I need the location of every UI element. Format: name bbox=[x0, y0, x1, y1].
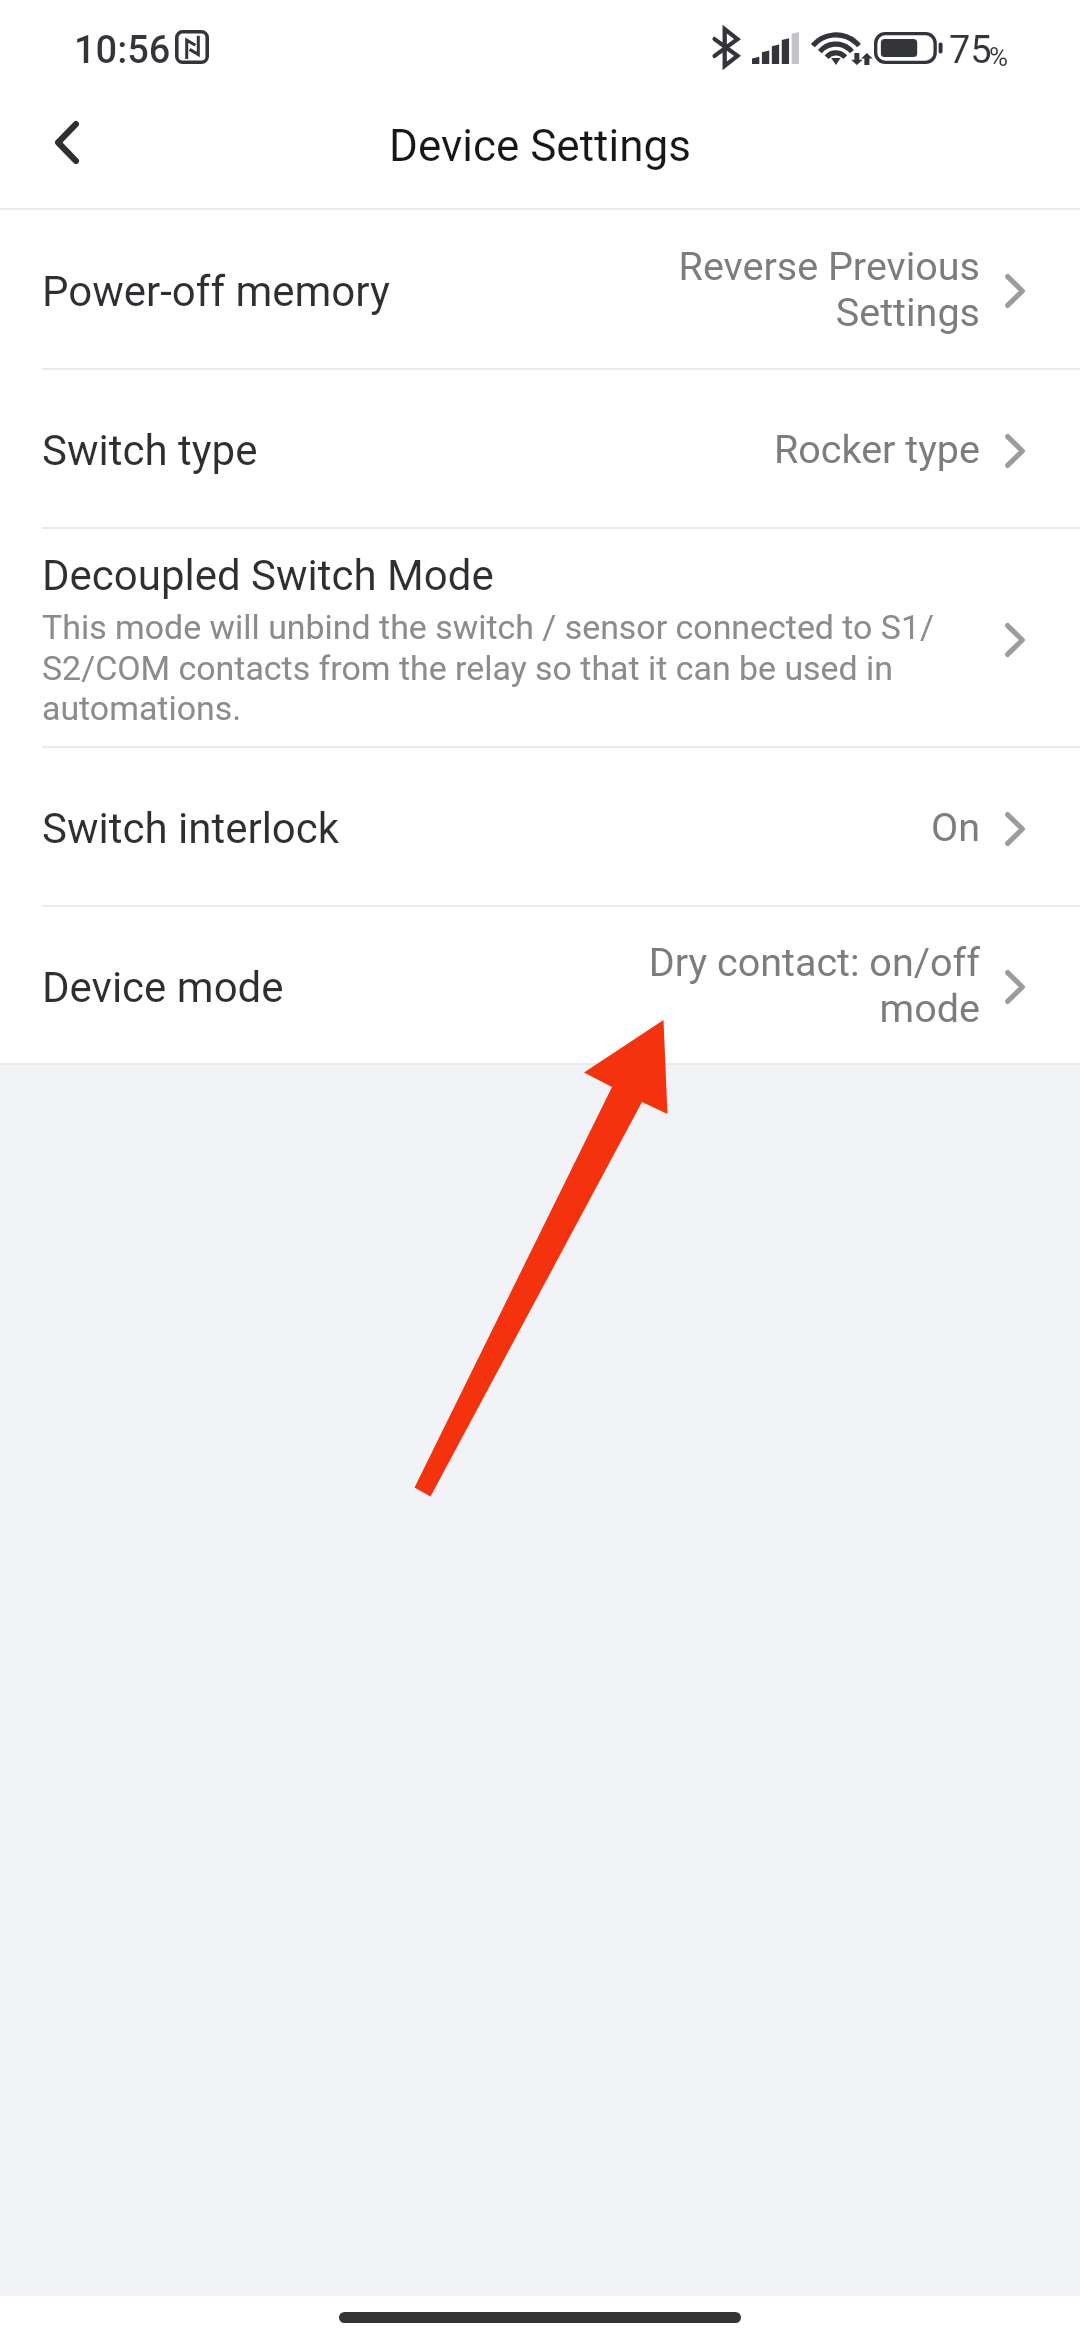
staticText: Device Settings bbox=[389, 120, 691, 172]
staticText: 75 bbox=[949, 28, 992, 73]
staticText: % bbox=[989, 42, 1009, 72]
staticText: Reverse Previous Settings bbox=[678, 243, 980, 336]
staticText: Device mode bbox=[42, 963, 284, 1012]
staticText: Switch interlock bbox=[42, 804, 340, 853]
staticText: Rocker type bbox=[773, 426, 980, 472]
staticText: On bbox=[931, 804, 980, 850]
button[interactable]: Switch type bbox=[0, 370, 1080, 527]
staticText: Dry contact: on/off mode bbox=[648, 939, 980, 1032]
staticText: Decoupled Switch Mode bbox=[42, 551, 494, 600]
staticText: 10:56 bbox=[74, 28, 171, 73]
button[interactable]: Power-off memory bbox=[0, 210, 1080, 368]
button[interactable]: Switch interlock bbox=[0, 748, 1080, 905]
button[interactable]: Decoupled Switch Mode bbox=[0, 529, 1080, 746]
button[interactable]: Device mode bbox=[0, 907, 1080, 1063]
staticText: This mode will unbind the switch / senso… bbox=[42, 608, 935, 728]
staticText: Switch type bbox=[42, 426, 258, 475]
button[interactable]: Back bbox=[12, 87, 122, 197]
staticText: Power-off memory bbox=[42, 267, 390, 316]
